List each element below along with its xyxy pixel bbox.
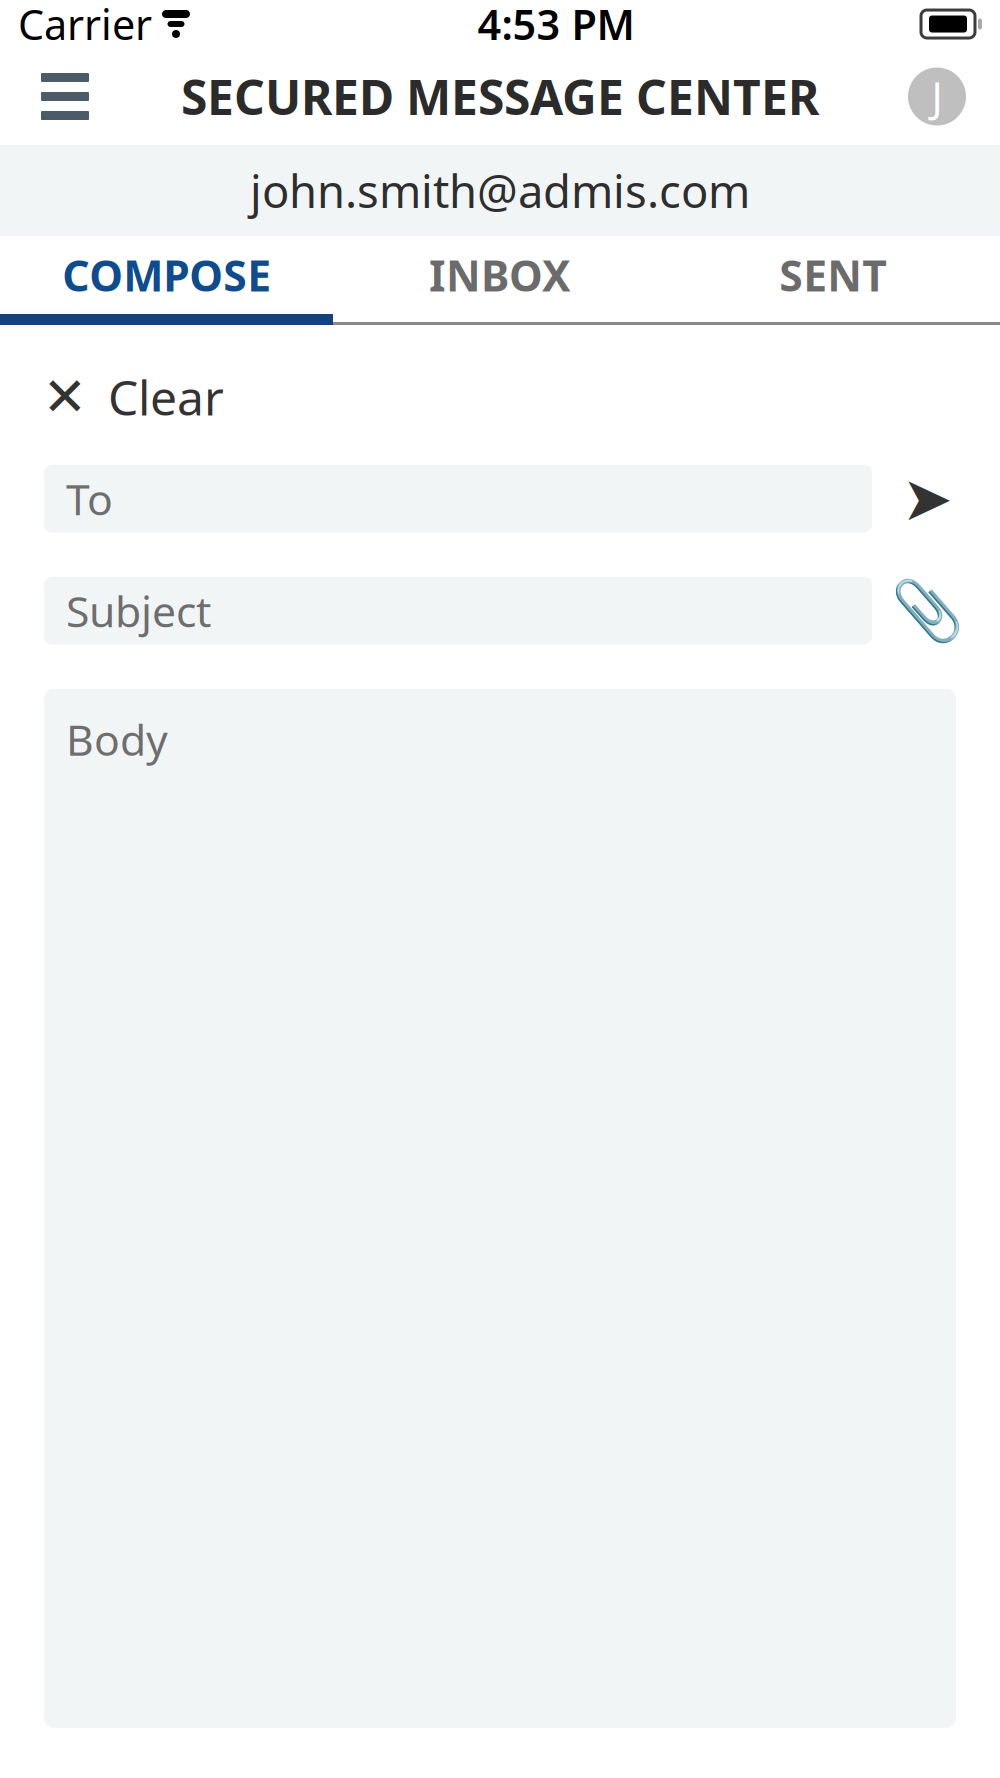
staticText: SECURED MESSAGE CENTER [181, 65, 819, 128]
button[interactable]: INBOX [333, 236, 667, 314]
staticText: J [931, 69, 942, 124]
button[interactable]: Attach file [872, 577, 982, 645]
button[interactable]: Account [902, 61, 972, 131]
staticText: 📎 [890, 577, 963, 644]
staticText: INBOX [429, 247, 571, 303]
staticText: COMPOSE [62, 247, 271, 303]
staticText: ✕ [42, 367, 87, 427]
staticText: SENT [779, 247, 887, 303]
button[interactable]: ✕ [44, 351, 224, 443]
staticText: To [66, 470, 113, 527]
staticText: ➤ [901, 464, 952, 533]
staticText: 4:53 PM [477, 0, 634, 51]
button[interactable]: Send [872, 465, 982, 533]
button[interactable]: COMPOSE [0, 236, 333, 314]
staticText: Clear [108, 365, 224, 429]
staticText: Body [66, 711, 168, 767]
staticText: john.smith@admis.com [250, 160, 750, 221]
button[interactable]: SENT [667, 236, 1000, 314]
staticText: Subject [66, 582, 211, 639]
button[interactable]: Menu [28, 58, 102, 134]
staticText: Carrier [18, 0, 152, 51]
